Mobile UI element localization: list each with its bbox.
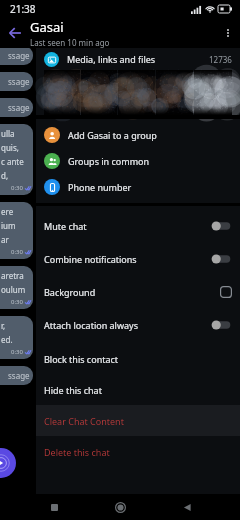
staticText: 0:30 <box>11 348 23 356</box>
button[interactable]: Photo 5 <box>194 70 232 115</box>
button[interactable]: Phone number <box>36 174 240 200</box>
button[interactable]: Mute chat <box>36 209 240 242</box>
staticText: Hide this chat <box>44 384 102 396</box>
staticText: Groups in common <box>68 155 150 167</box>
staticText: Mute chat <box>44 220 211 232</box>
button[interactable]: Home <box>107 494 133 520</box>
button[interactable]: Groups in common <box>36 148 240 174</box>
button[interactable]: Clear Chat Content <box>36 405 240 436</box>
staticText: c ante <box>1 156 24 167</box>
staticText: ium <box>1 220 16 231</box>
button[interactable]: More options <box>216 18 240 48</box>
button[interactable]: Combine notifications <box>36 242 240 275</box>
staticText: Clear Chat Content <box>44 415 124 427</box>
button[interactable]: Back <box>174 494 200 520</box>
staticText: ssage <box>8 102 30 113</box>
staticText: Media, links and files <box>67 53 209 65</box>
staticText: quis, <box>1 142 19 153</box>
button[interactable]: Photo 3 <box>118 70 155 115</box>
button[interactable]: Back <box>0 18 30 48</box>
button[interactable]: Photo 2 <box>81 70 117 115</box>
button[interactable]: Hide this chat <box>36 374 240 405</box>
button[interactable]: Block this contact <box>36 343 240 374</box>
staticText: ssage <box>8 370 30 381</box>
staticText: ar <box>1 234 9 245</box>
staticText: ssage <box>8 76 30 87</box>
staticText: ed. <box>1 334 13 345</box>
staticText: Phone number <box>68 181 132 193</box>
staticText: Block this contact <box>44 353 119 365</box>
staticText: 21:38 <box>10 2 36 16</box>
staticText: Add Gasai to a group <box>68 129 157 141</box>
button[interactable]: Background <box>36 275 240 308</box>
staticText: d, <box>1 170 9 181</box>
staticText: Last seen 10 min ago <box>30 37 110 48</box>
button[interactable]: Attach location always <box>36 308 240 341</box>
staticText: 0:30 <box>11 184 23 192</box>
button[interactable]: Recents <box>41 494 67 520</box>
button[interactable]: Voice message <box>0 448 16 478</box>
button[interactable]: Photo 1 <box>44 70 80 115</box>
staticText: oulum <box>1 284 26 295</box>
staticText: Gasai <box>30 18 64 36</box>
staticText: ere <box>1 206 14 217</box>
staticText: ulla <box>1 128 15 139</box>
staticText: 12736 <box>209 54 232 65</box>
staticText: 0:30 <box>11 248 23 256</box>
button[interactable]: Delete this chat <box>36 436 240 467</box>
button[interactable]: Media, links and files <box>36 48 240 70</box>
button[interactable]: Photo 4 <box>156 70 193 115</box>
button[interactable]: Add Gasai to a group <box>36 122 240 148</box>
staticText: Background <box>44 286 220 298</box>
staticText: 0:30 <box>11 298 23 306</box>
staticText: ssage <box>8 50 30 61</box>
staticText: Combine notifications <box>44 253 211 265</box>
staticText: r, <box>1 320 6 331</box>
staticText: Attach location always <box>44 319 211 331</box>
staticText: aretra <box>1 270 24 281</box>
staticText: Delete this chat <box>44 446 110 458</box>
